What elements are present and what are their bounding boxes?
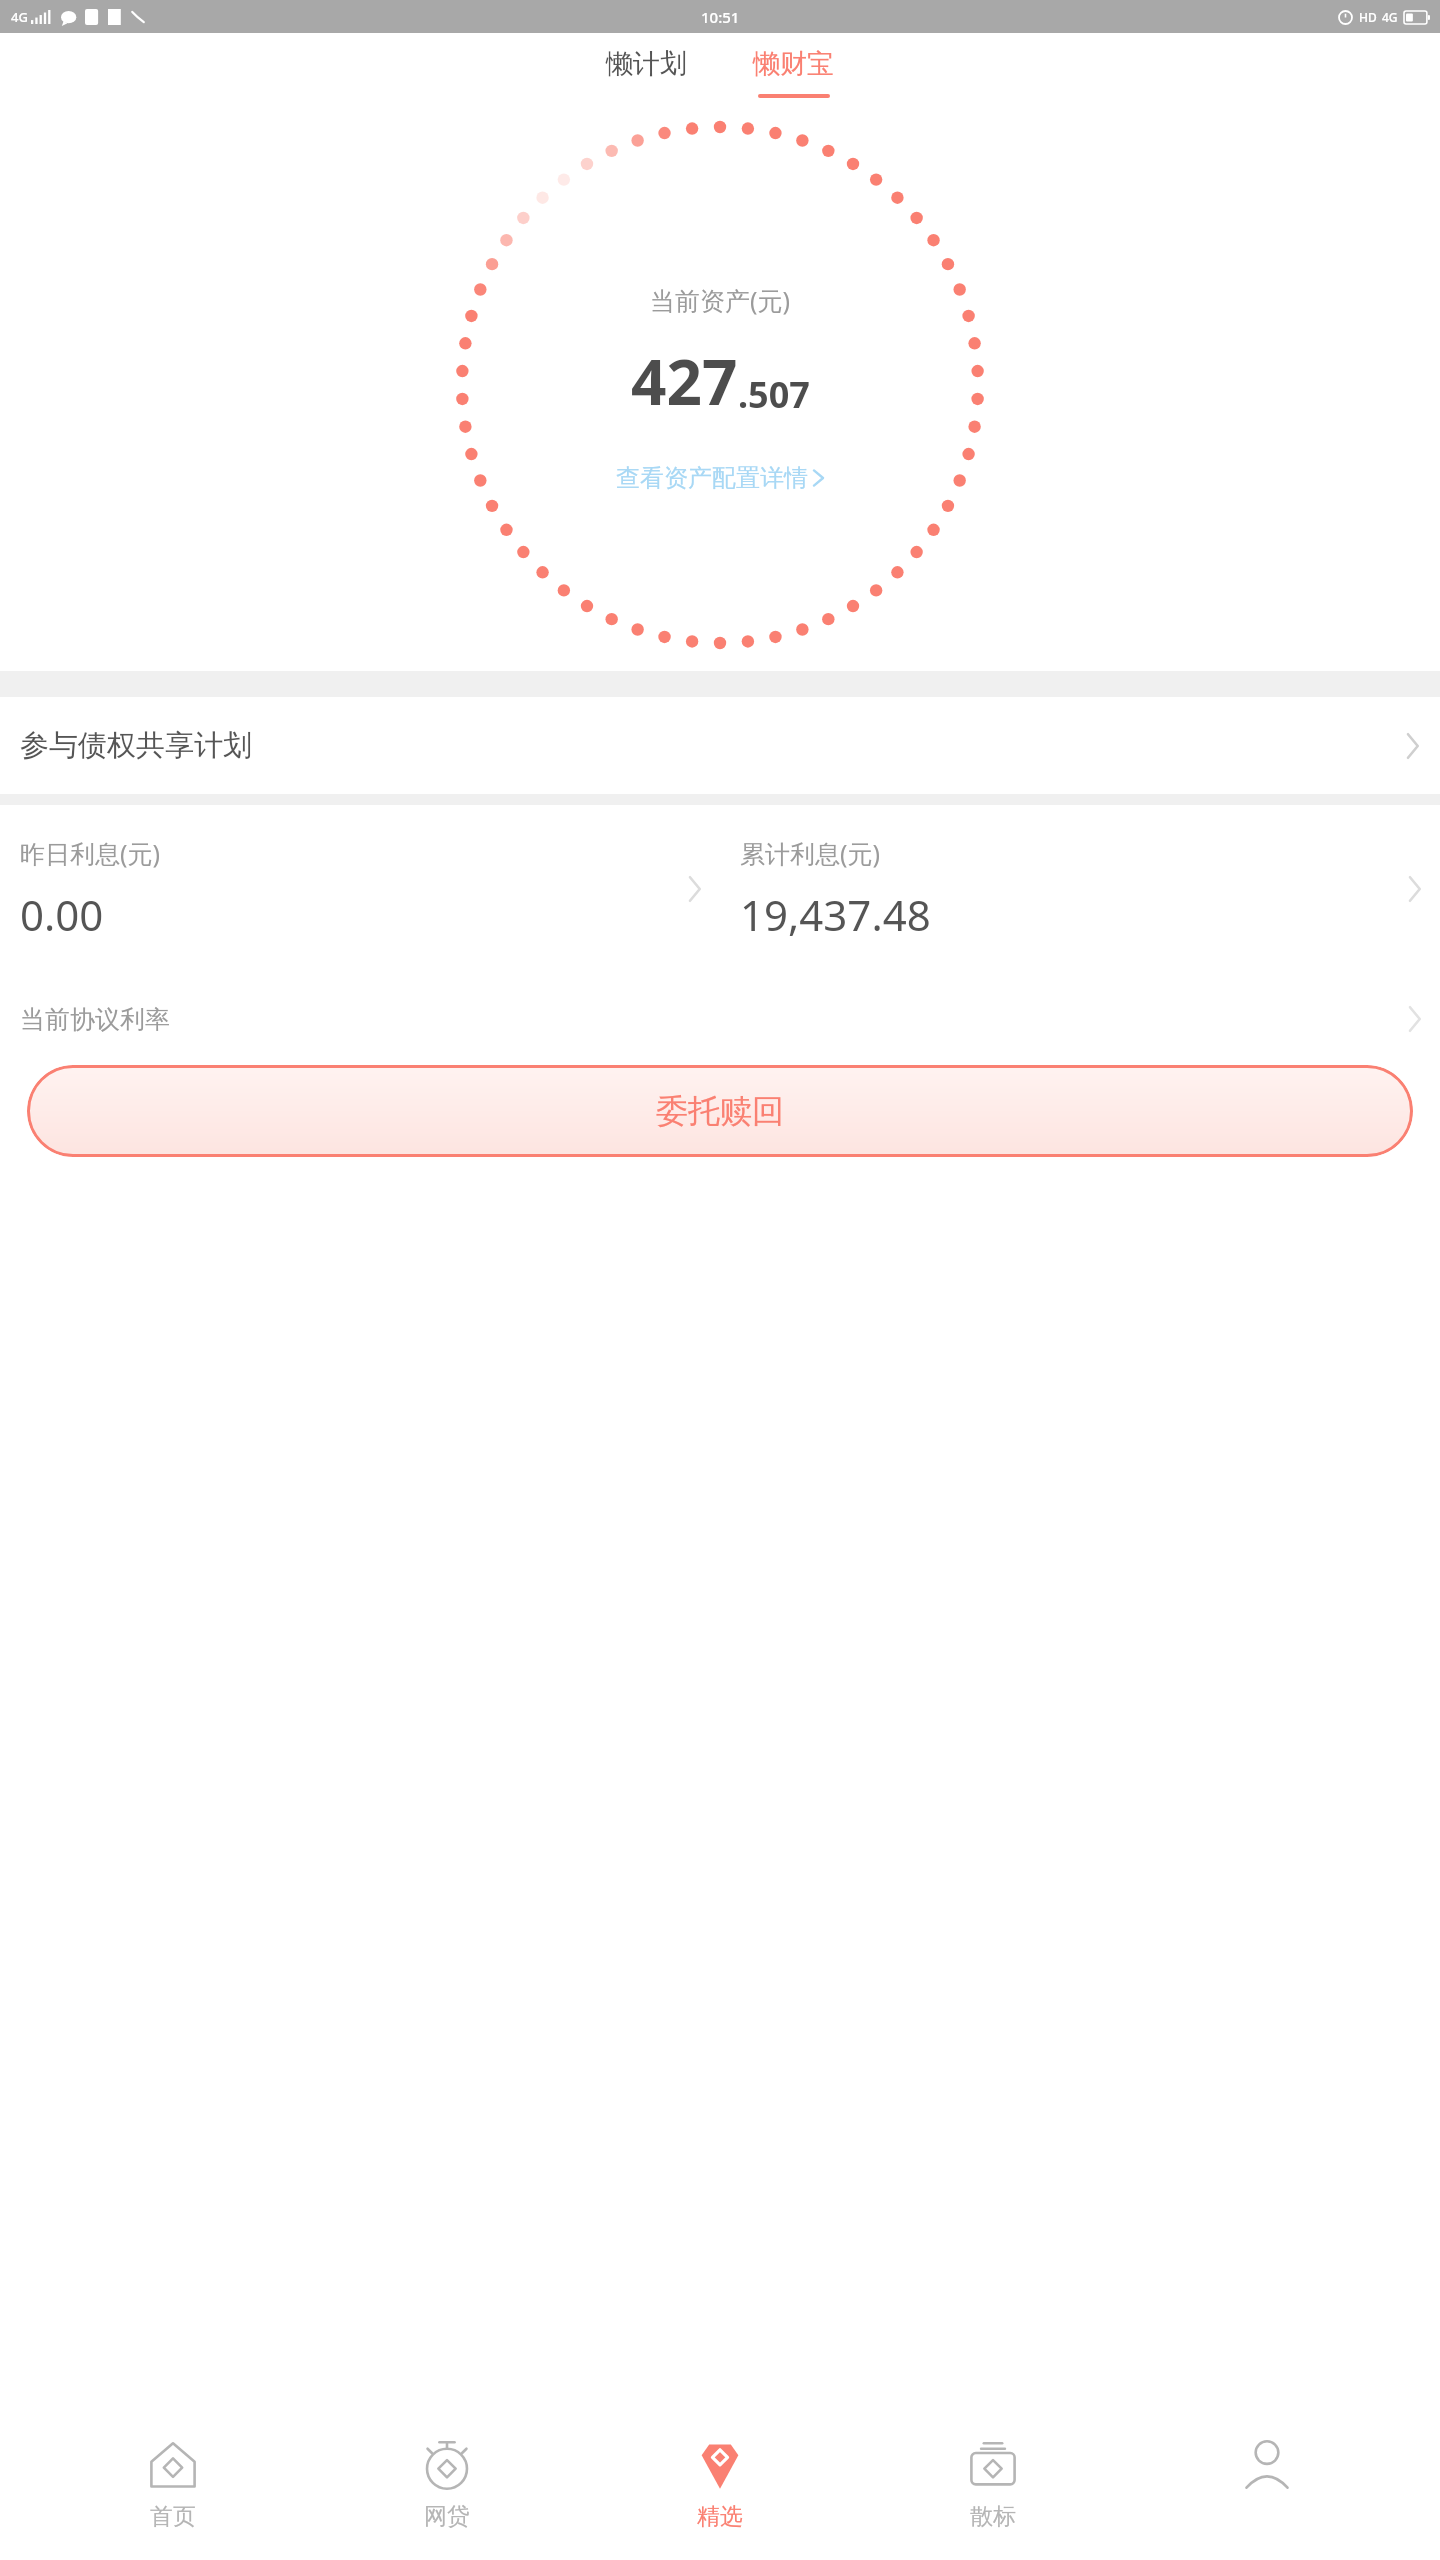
button[interactable]: 参与债权共享计划 <box>0 697 1440 794</box>
button[interactable]: 懒计划 <box>590 41 703 87</box>
button[interactable]: 当前协议利率 <box>0 973 1440 1065</box>
staticText: 4G <box>11 8 28 26</box>
button[interactable]: 查看资产配置详情 <box>606 457 835 499</box>
button[interactable]: 昨日利息(元) <box>0 805 720 973</box>
button[interactable]: 首页 <box>73 2410 273 2560</box>
staticText: 当前协议利率 <box>20 1004 170 1035</box>
staticText: 427 <box>631 339 738 423</box>
button[interactable]: 散标 <box>893 2410 1093 2560</box>
staticText: .507 <box>738 370 810 419</box>
button[interactable]: 委托赎回 <box>27 1065 1413 1157</box>
staticText: 10:51 <box>701 7 740 27</box>
staticText: 累计利息(元) <box>740 836 881 870</box>
staticText: 4G <box>1382 9 1398 25</box>
staticText: 查看资产配置详情 <box>616 463 808 493</box>
staticText: 当前资产(元) <box>650 283 791 317</box>
staticText: 懒财宝 <box>753 47 834 81</box>
button[interactable]: 精选 <box>620 2410 820 2560</box>
staticText: HD <box>1359 9 1377 25</box>
staticText: 0.00 <box>20 886 104 943</box>
staticText: 散标 <box>970 2502 1016 2531</box>
staticText: 懒计划 <box>606 47 687 81</box>
staticText: 精选 <box>697 2502 743 2531</box>
staticText: 昨日利息(元) <box>20 836 161 870</box>
staticText: 19,437.48 <box>740 886 931 943</box>
staticText: 委托赎回 <box>656 1091 784 1131</box>
button[interactable]: 网贷 <box>347 2410 547 2560</box>
button[interactable]: 累计利息(元) <box>720 805 1440 973</box>
button[interactable]: 懒财宝 <box>737 41 850 104</box>
staticText: 首页 <box>150 2502 196 2531</box>
staticText: 参与债权共享计划 <box>20 727 252 764</box>
button[interactable]: 我的 <box>1167 2410 1367 2560</box>
staticText: 网贷 <box>424 2502 470 2531</box>
